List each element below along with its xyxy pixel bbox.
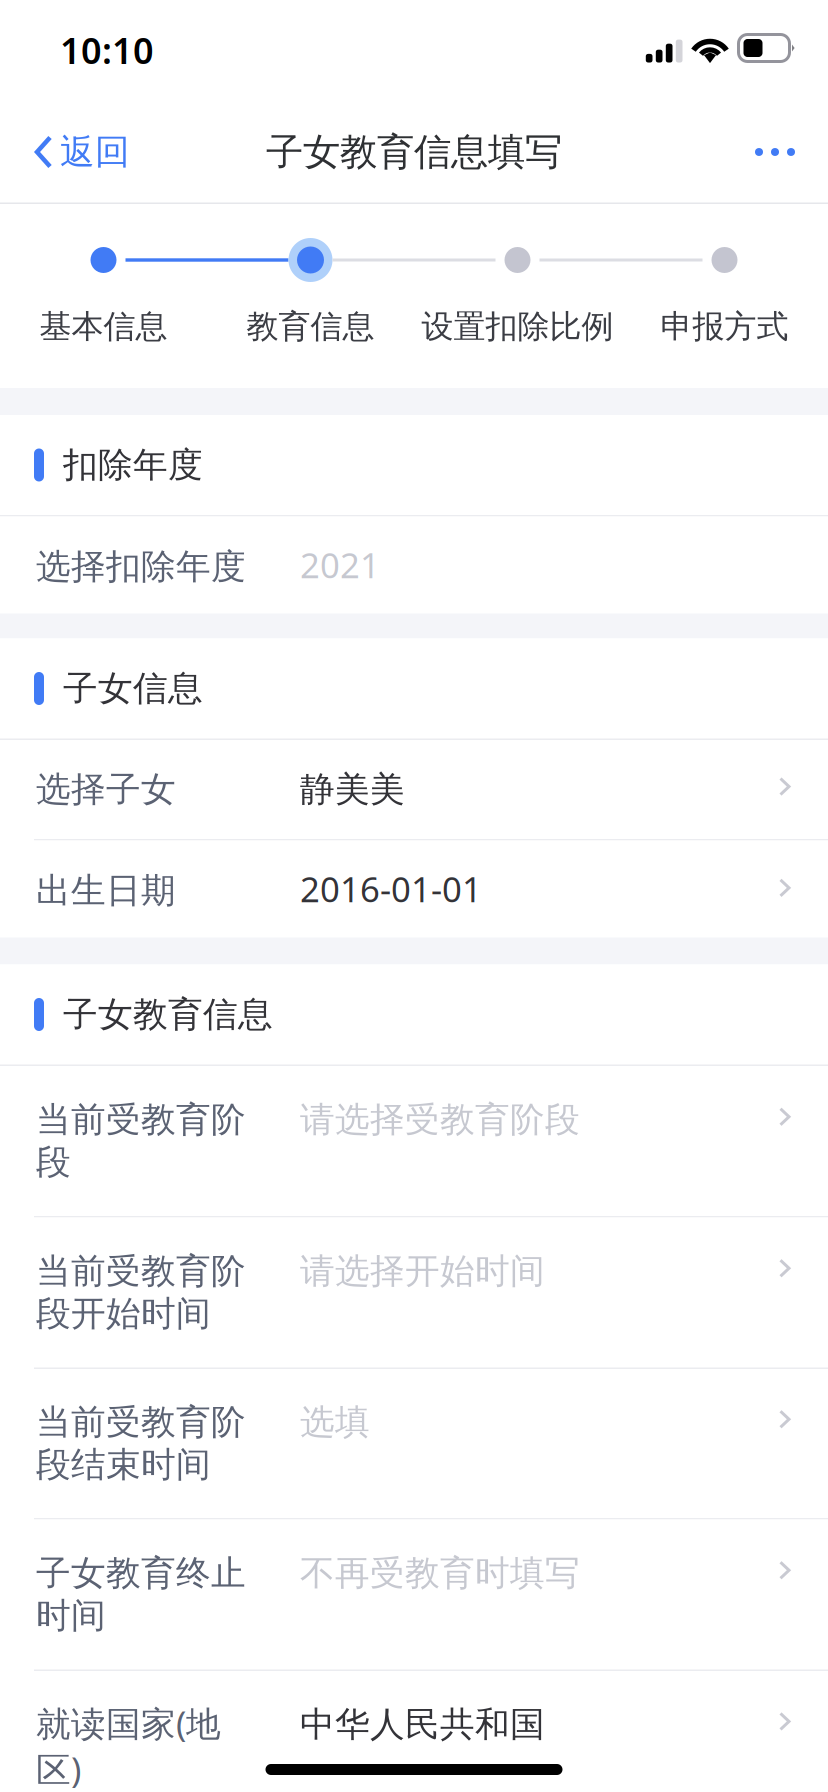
staticText: 子女信息	[63, 667, 203, 710]
button[interactable]: 就读国家(地区)	[0, 1671, 828, 1792]
staticText: 当前受教育阶段	[36, 1098, 246, 1184]
staticText: 设置扣除比例	[421, 307, 613, 346]
staticText: 选填	[300, 1401, 370, 1443]
button[interactable]: 选择子女	[0, 740, 828, 839]
staticText: 中华人民共和国	[300, 1703, 545, 1746]
button[interactable]: 当前受教育阶段结束时间	[0, 1369, 828, 1518]
staticText: 选择扣除年度	[36, 545, 246, 588]
staticText: 就读国家(地区)	[36, 1700, 221, 1792]
button[interactable]: 出生日期	[0, 840, 828, 937]
button[interactable]: 当前受教育阶段开始时间	[0, 1217, 828, 1367]
staticText: 申报方式	[660, 307, 788, 346]
staticText: 静美美	[300, 768, 405, 811]
staticText: 10:10	[60, 26, 154, 74]
staticText: 请选择受教育阶段	[300, 1098, 580, 1141]
button[interactable]: More	[731, 126, 828, 178]
staticText: 基本信息	[39, 307, 167, 346]
button[interactable]: 子女教育终止时间	[0, 1519, 828, 1669]
staticText: 教育信息	[246, 307, 374, 346]
staticText: 2016-01-01	[300, 866, 482, 912]
staticText: 扣除年度	[63, 444, 203, 486]
staticText: 当前受教育阶段开始时间	[36, 1250, 246, 1335]
button[interactable]: 当前受教育阶段	[0, 1066, 828, 1216]
staticText: 当前受教育阶段结束时间	[36, 1401, 246, 1486]
button[interactable]: 返回	[0, 117, 130, 187]
staticText: 出生日期	[36, 869, 176, 912]
staticText: 不再受教育时填写	[300, 1552, 580, 1594]
staticText: 2021	[300, 542, 380, 588]
button[interactable]: 选择扣除年度	[0, 516, 828, 613]
staticText: 请选择开始时间	[300, 1250, 545, 1292]
staticText: 返回	[60, 131, 130, 173]
staticText: 选择子女	[36, 768, 176, 811]
staticText: 子女教育信息填写	[266, 129, 562, 175]
staticText: 子女教育信息	[63, 993, 273, 1036]
staticText: 子女教育终止时间	[36, 1552, 246, 1637]
